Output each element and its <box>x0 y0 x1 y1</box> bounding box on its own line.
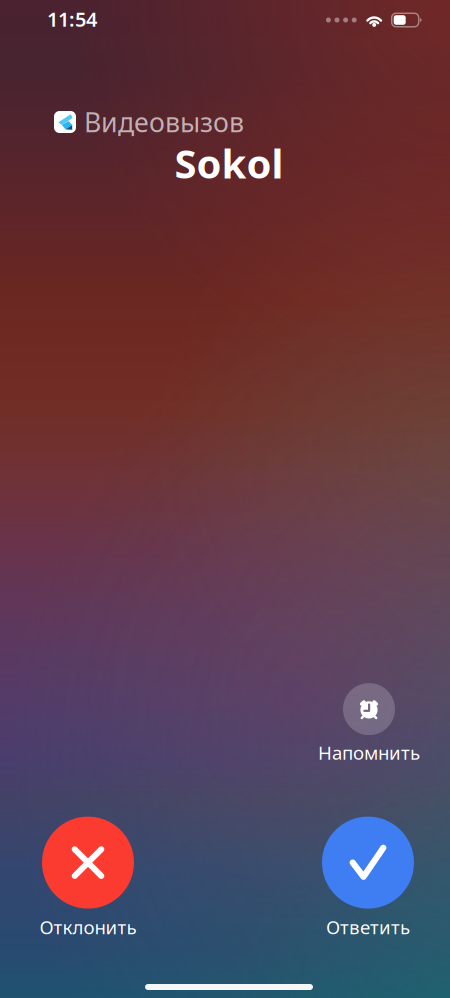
button[interactable]: Ответить <box>322 817 414 939</box>
staticText: Напомнить <box>318 740 420 765</box>
staticText: Sokol <box>174 136 283 189</box>
button[interactable]: Отклонить <box>39 817 136 939</box>
staticText: Отклонить <box>39 915 136 939</box>
staticText: Ответить <box>326 915 410 939</box>
staticText: Видеовызов <box>84 104 244 140</box>
staticText: 11:54 <box>47 6 97 32</box>
button[interactable]: Напомнить <box>318 683 420 765</box>
